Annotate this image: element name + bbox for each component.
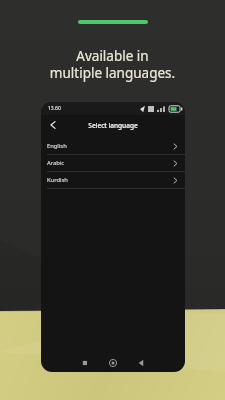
button[interactable]: English	[41, 138, 185, 155]
staticText: Available in multiple languages.	[12, 47, 213, 82]
button[interactable]: Arabic	[41, 155, 185, 172]
button[interactable]: Kurdish	[41, 172, 185, 189]
staticText: English	[47, 142, 67, 150]
staticText: Select language	[88, 121, 138, 130]
button[interactable]: Page indicator	[78, 20, 148, 24]
staticText: Arabic	[47, 159, 65, 167]
staticText: Kurdish	[47, 176, 68, 184]
staticText: 13.60	[48, 105, 61, 112]
button[interactable]: Back	[45, 118, 59, 132]
